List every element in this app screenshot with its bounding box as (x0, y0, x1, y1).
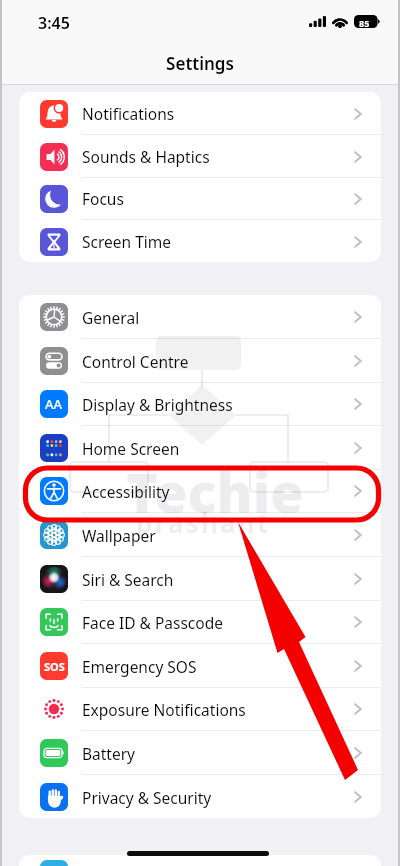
staticText: Focus (82, 188, 124, 209)
button[interactable]: Sounds & Haptics (19, 135, 381, 178)
staticText: Accessibility (82, 481, 170, 502)
staticText: AA (45, 395, 63, 413)
staticText: Battery (82, 743, 136, 764)
button[interactable]: Screen Time (19, 220, 381, 262)
staticText: Screen Time (82, 231, 171, 252)
staticText: Exposure Notifications (82, 699, 246, 720)
staticText: SOS (44, 659, 65, 674)
button[interactable]: SOS (19, 644, 381, 688)
staticText: Techie (126, 455, 304, 529)
staticText: 3:45 (38, 12, 70, 34)
staticText: 85 (359, 17, 370, 29)
button[interactable]: Accessibility (19, 469, 381, 513)
button[interactable] (19, 855, 381, 866)
staticText: Notifications (82, 103, 175, 124)
button[interactable]: Home Screen (19, 426, 381, 470)
button[interactable]: Face ID & Passcode (19, 600, 381, 644)
staticText: Privacy & Security (82, 787, 212, 808)
button[interactable]: Exposure Notifications (19, 687, 381, 731)
button[interactable]: AA (19, 382, 381, 426)
button[interactable]: Privacy & Security (19, 775, 381, 818)
staticText: Sounds & Haptics (82, 146, 210, 167)
button[interactable]: Wallpaper (19, 513, 381, 557)
staticText: Wallpaper (82, 525, 156, 546)
button[interactable]: Control Centre (19, 339, 381, 383)
button[interactable]: Battery (19, 731, 381, 775)
staticText: Settings (0, 52, 400, 75)
button[interactable]: Siri & Search (19, 557, 381, 601)
staticText: prashant (136, 505, 271, 540)
staticText: Home Screen (82, 438, 180, 459)
staticText: Emergency SOS (82, 656, 197, 677)
staticText: Face ID & Passcode (82, 612, 223, 633)
staticText: Siri & Search (82, 569, 174, 590)
staticText: General (82, 307, 140, 328)
button[interactable]: General (19, 295, 381, 339)
staticText: Display & Brightness (82, 394, 233, 415)
button[interactable]: Focus (19, 177, 381, 220)
staticText: Control Centre (82, 351, 189, 372)
button[interactable]: Notifications (19, 92, 381, 135)
